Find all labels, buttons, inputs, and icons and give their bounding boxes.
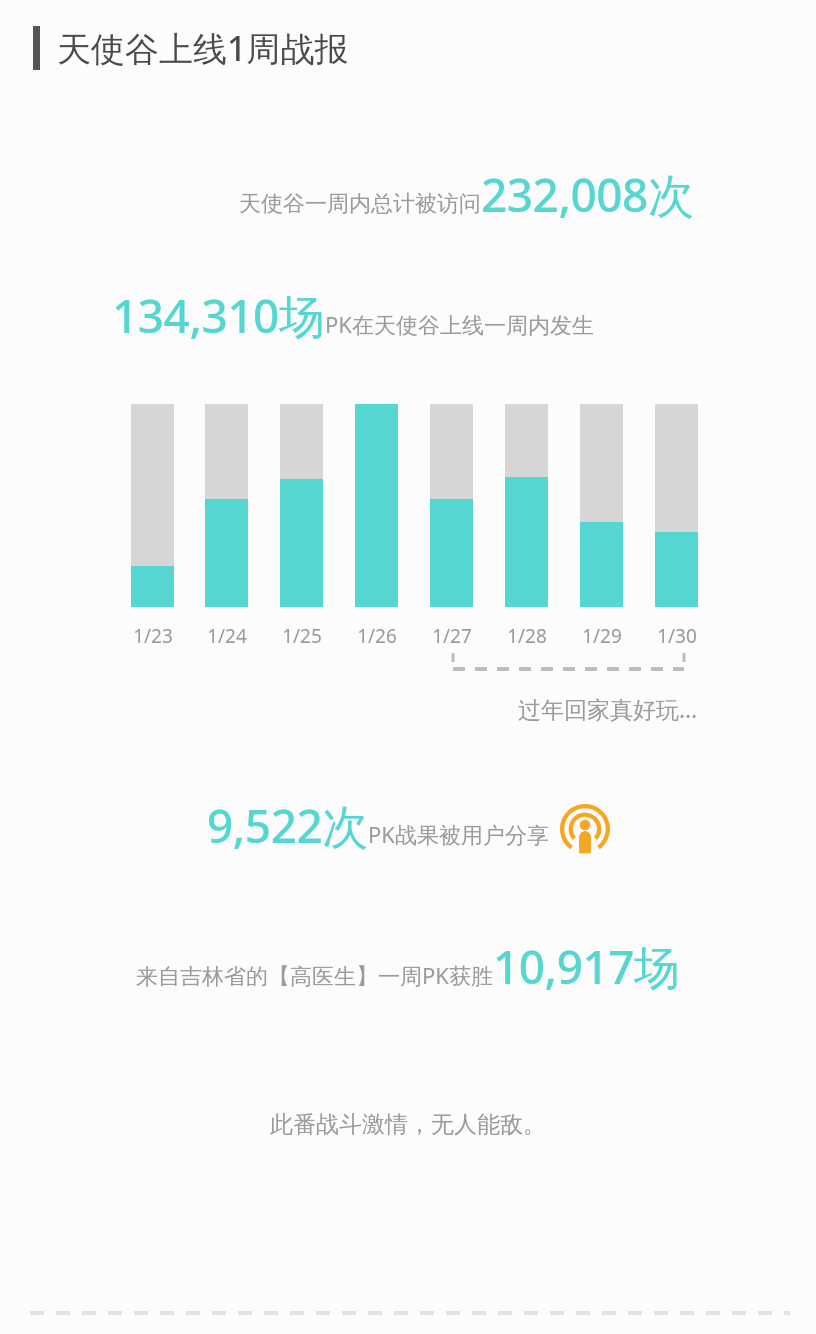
staticText: 10,917场	[493, 935, 680, 998]
staticText: 134,310场	[112, 284, 325, 347]
button[interactable]	[580, 404, 623, 607]
button[interactable]	[655, 404, 698, 607]
button[interactable]	[430, 404, 473, 607]
other: Share broadcast	[560, 804, 610, 854]
staticText: 来自吉林省的【高医生】一周PK获胜	[136, 960, 493, 990]
staticText: PK在天使谷上线一周内发生	[325, 309, 594, 339]
staticText: 1/29	[582, 623, 622, 649]
staticText: 9,522次	[207, 794, 368, 857]
staticText: 天使谷上线1周战报	[57, 25, 349, 71]
staticText: 此番战斗激情，无人能敌。	[270, 1110, 546, 1139]
staticText: 天使谷一周内总计被访问	[239, 190, 481, 218]
staticText: 1/24	[207, 623, 247, 649]
button[interactable]: 天使谷一周内总计被访问	[0, 163, 694, 226]
staticText: 过年回家真好玩…	[518, 693, 698, 724]
staticText: PK战果被用户分享	[368, 819, 549, 849]
staticText: 1/28	[507, 623, 547, 649]
button[interactable]	[505, 404, 548, 607]
button[interactable]: 来自吉林省的【高医生】一周PK获胜	[0, 935, 816, 998]
staticText: 1/30	[657, 623, 697, 649]
staticText: 1/23	[133, 623, 173, 649]
staticText: 1/26	[357, 623, 397, 649]
button[interactable]	[280, 404, 323, 607]
button[interactable]	[131, 404, 174, 607]
button[interactable]: 134,310场	[112, 284, 816, 347]
button[interactable]	[205, 404, 248, 607]
button[interactable]: 9,522次	[0, 794, 816, 857]
staticText: 232,008次	[481, 163, 694, 226]
staticText: 1/25	[282, 623, 322, 649]
button[interactable]: 天使谷上线1周战报	[33, 25, 816, 71]
staticText: 1/27	[432, 623, 472, 649]
